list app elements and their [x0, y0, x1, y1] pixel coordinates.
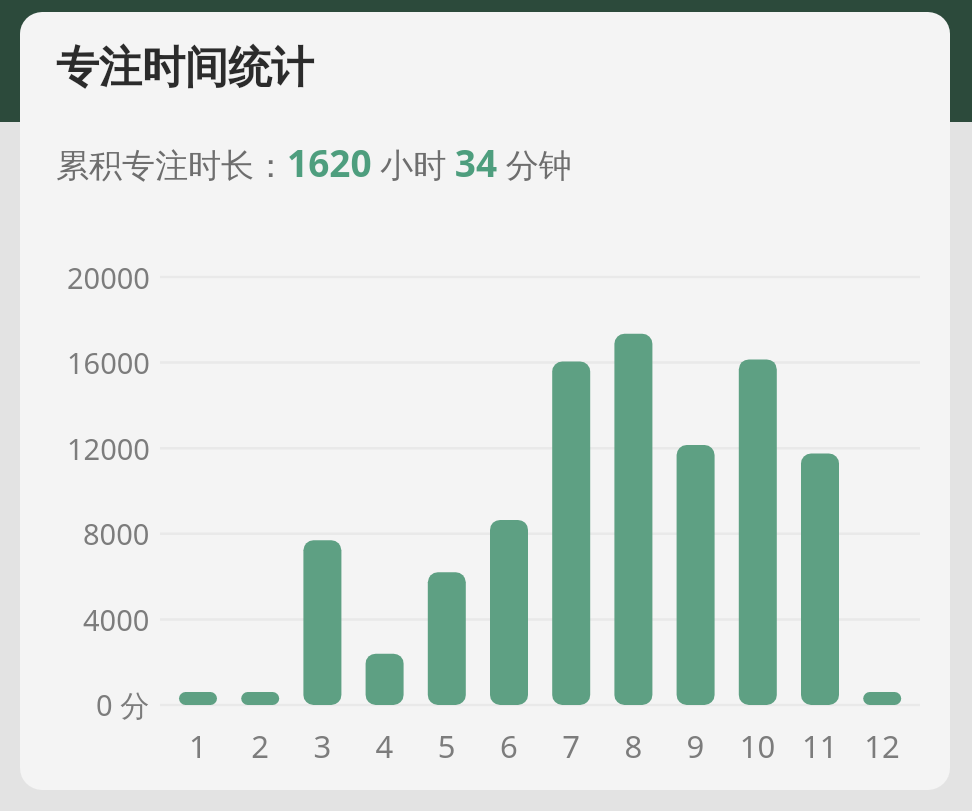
staticText: 专注时间统计 [56, 41, 314, 95]
button[interactable]: Monthly focus time bar chart [20, 200, 950, 790]
button[interactable]: 专注时间统计 [20, 12, 950, 790]
staticText: 累积专注时长：1620 小时 34 分钟 [56, 137, 572, 187]
